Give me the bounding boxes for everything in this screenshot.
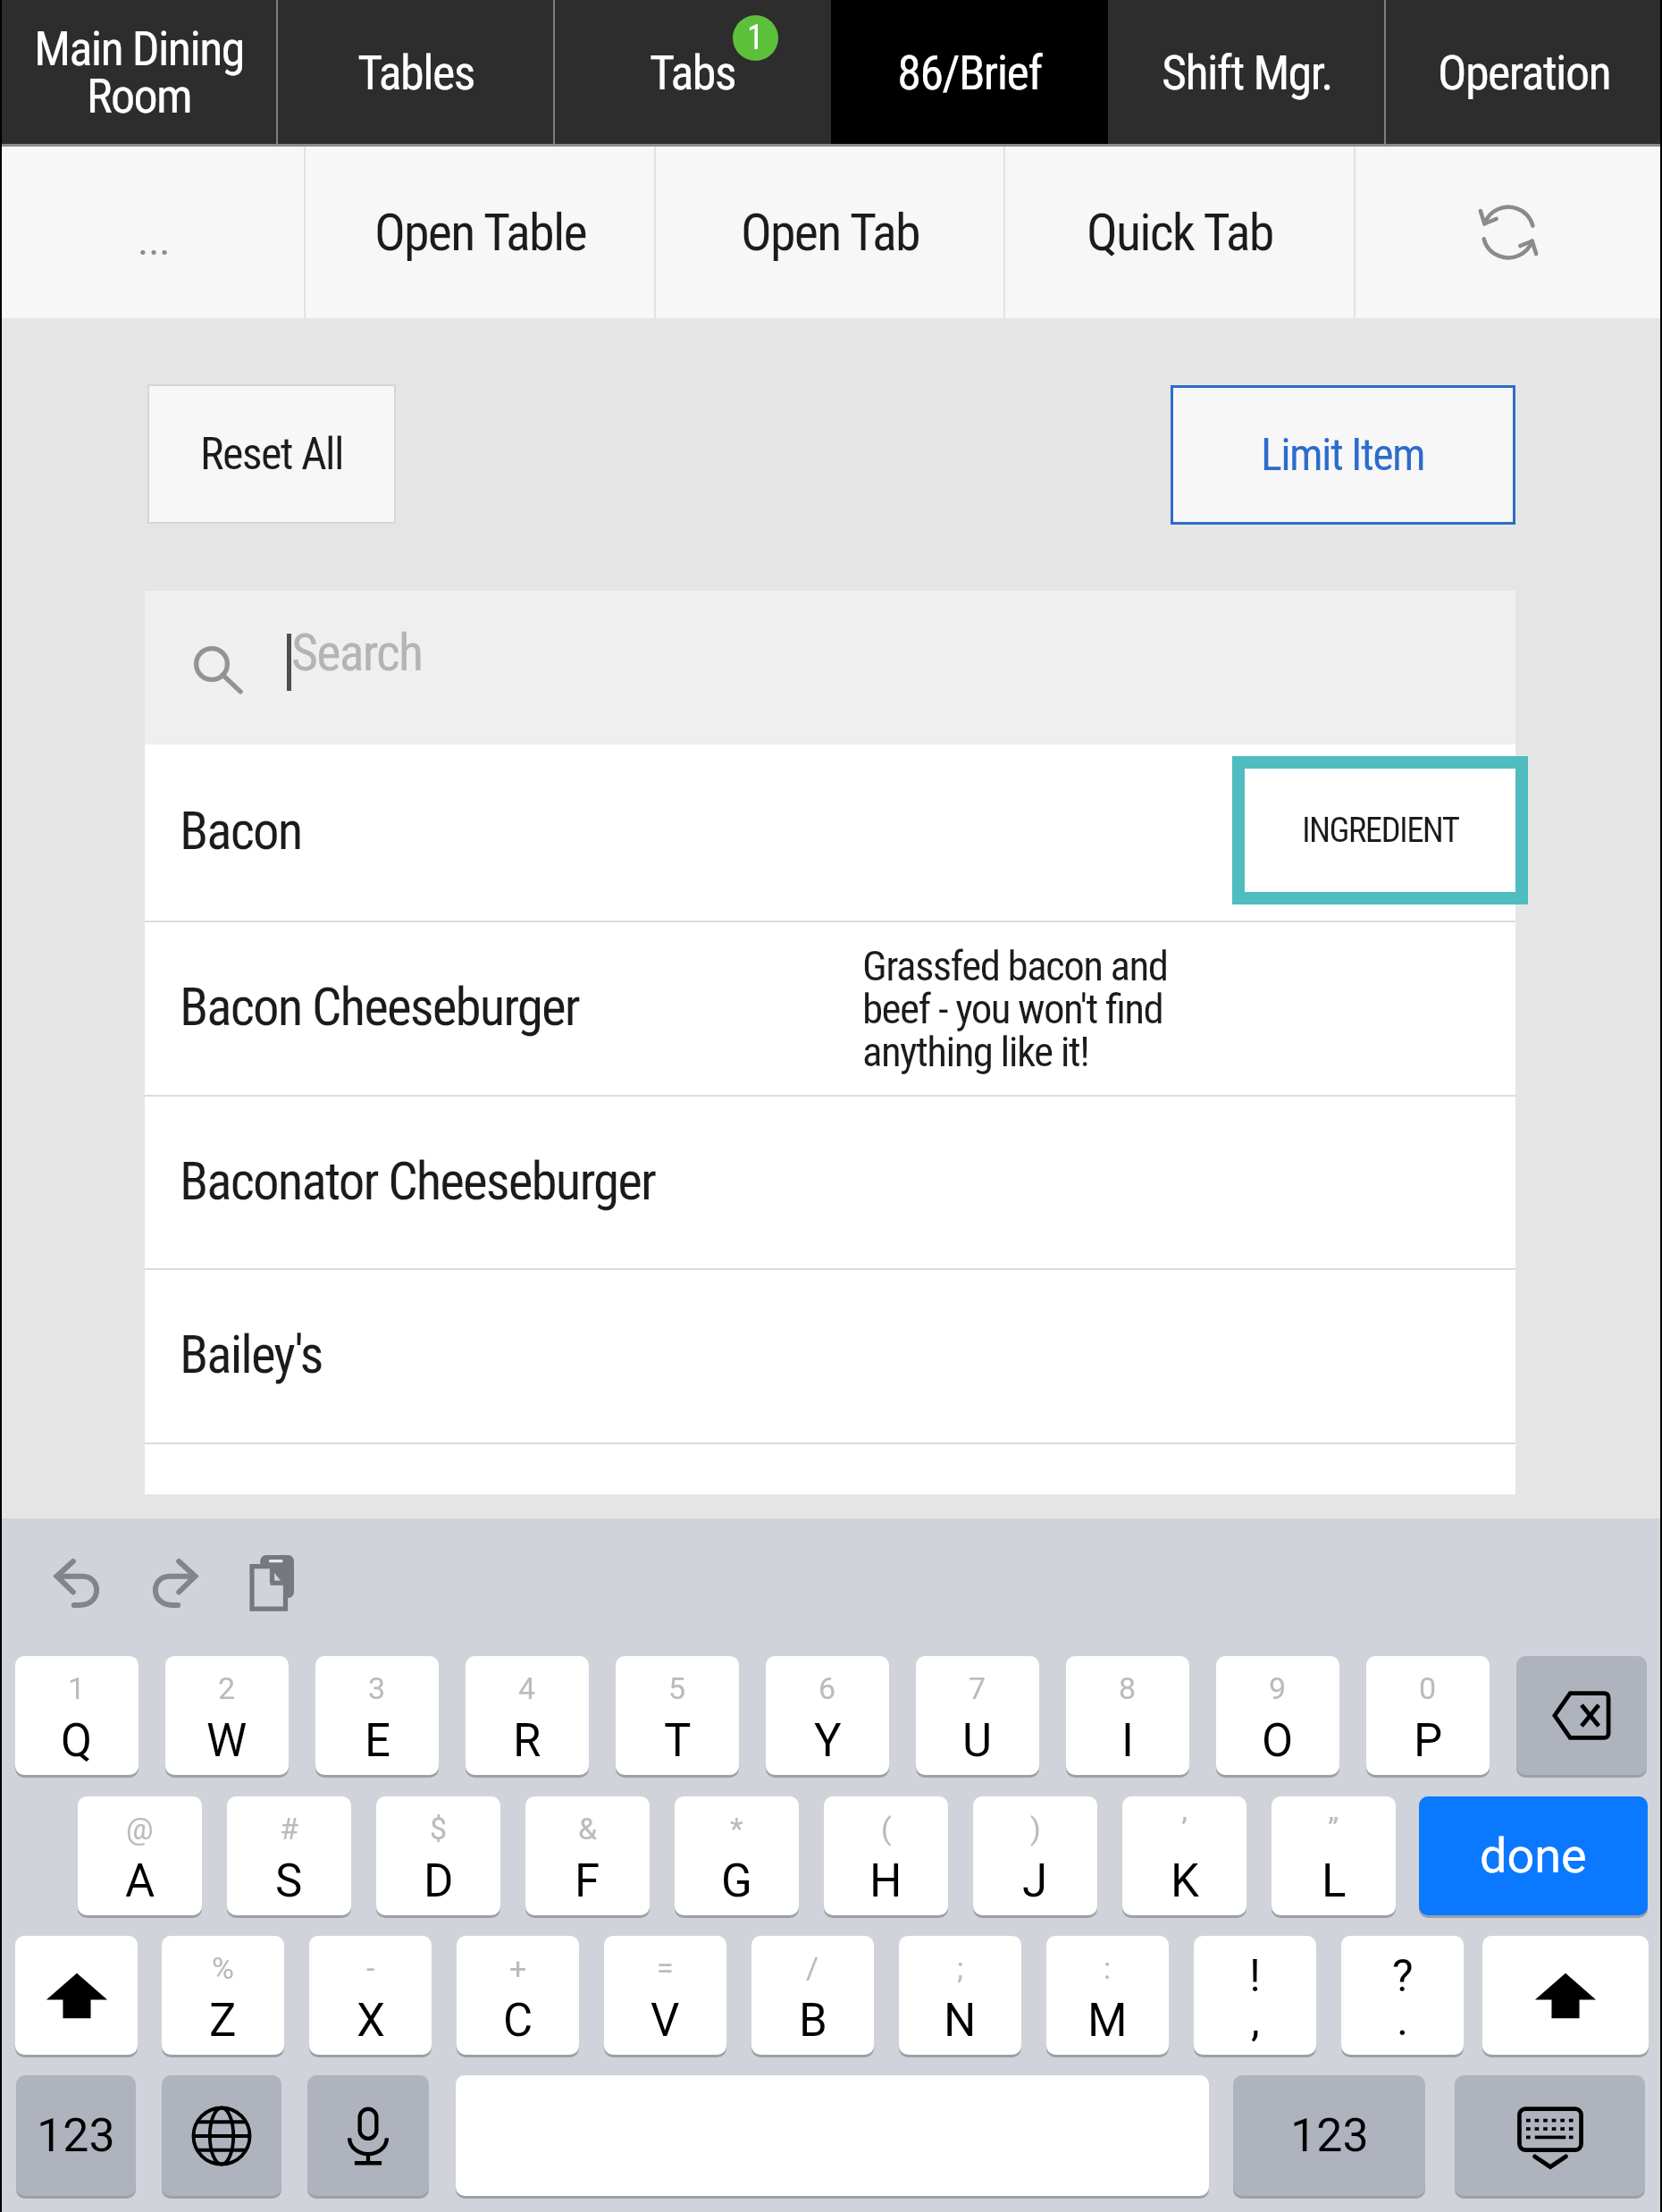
staticText: 8: [1119, 1670, 1137, 1706]
staticText: C: [503, 1994, 533, 2048]
staticText: ;: [957, 1950, 964, 1986]
button[interactable]: ’: [1122, 1796, 1246, 1915]
staticText: T: [664, 1714, 692, 1768]
button[interactable]: -: [309, 1936, 432, 2055]
staticText: U: [962, 1714, 993, 1768]
button[interactable]: Tables: [277, 0, 554, 145]
staticText: I: [1121, 1714, 1134, 1768]
staticText: Y: [814, 1714, 842, 1768]
staticText: 6: [818, 1670, 836, 1706]
button[interactable]: Baconator Cheeseburger: [145, 1097, 1515, 1268]
button[interactable]: (: [824, 1796, 948, 1915]
staticText: -: [366, 1950, 375, 1986]
button[interactable]: !: [1194, 1936, 1316, 2055]
button[interactable]: =: [604, 1936, 726, 2055]
button[interactable]: 5: [616, 1656, 739, 1775]
staticText: Z: [209, 1994, 237, 2048]
staticText: X: [357, 1994, 385, 2048]
button[interactable]: $: [376, 1796, 500, 1915]
button[interactable]: :: [1046, 1936, 1169, 2055]
button[interactable]: Limit Item: [1171, 385, 1515, 525]
button[interactable]: Backspace: [1516, 1656, 1647, 1775]
button[interactable]: *: [675, 1796, 799, 1915]
button[interactable]: Operation: [1385, 0, 1662, 145]
button[interactable]: 7: [916, 1656, 1039, 1775]
staticText: done: [1480, 1828, 1587, 1884]
button[interactable]: Space: [456, 2075, 1209, 2196]
staticText: .: [1397, 1994, 1409, 2047]
button[interactable]: Shift: [15, 1936, 138, 2055]
button[interactable]: #: [227, 1796, 351, 1915]
staticText: Search: [291, 622, 423, 683]
button[interactable]: %: [162, 1936, 284, 2055]
button[interactable]: 0: [1366, 1656, 1490, 1775]
staticText: 7: [969, 1670, 986, 1706]
staticText: A: [125, 1855, 155, 1908]
button[interactable]: Bacon Cheeseburger: [145, 922, 1515, 1095]
staticText: 123: [1290, 2108, 1369, 2163]
staticText: Main Dining Room: [34, 21, 244, 124]
staticText: ...: [138, 216, 171, 265]
button[interactable]: Undo: [32, 1538, 123, 1629]
button[interactable]: Quick Tab: [1004, 146, 1355, 318]
button[interactable]: @: [78, 1796, 202, 1915]
staticText: N: [944, 1994, 977, 2048]
button[interactable]: ...: [0, 146, 305, 318]
staticText: E: [365, 1714, 390, 1768]
button[interactable]: INGREDIENT: [1232, 756, 1528, 904]
staticText: Grassfed bacon and beef - you won't find…: [862, 941, 1168, 1076]
button[interactable]: Bailey's: [145, 1270, 1515, 1442]
button[interactable]: Refresh: [1355, 146, 1662, 318]
button[interactable]: Bacon: [145, 744, 1515, 921]
staticText: Q: [61, 1714, 93, 1768]
button[interactable]: 9: [1216, 1656, 1339, 1775]
button[interactable]: Shift Mgr.: [1108, 0, 1385, 145]
button[interactable]: Tabs: [554, 0, 831, 145]
staticText: Operation: [1438, 45, 1610, 101]
button[interactable]: Dictation: [307, 2075, 429, 2196]
button[interactable]: Paste: [226, 1536, 317, 1627]
staticText: G: [721, 1855, 752, 1908]
staticText: $: [430, 1811, 448, 1846]
staticText: +: [509, 1950, 527, 1986]
button[interactable]: 3: [315, 1656, 439, 1775]
staticText: :: [1104, 1950, 1112, 1986]
staticText: (: [881, 1811, 892, 1846]
button[interactable]: Open Tab: [655, 146, 1004, 318]
button[interactable]: done: [1419, 1796, 1648, 1915]
staticText: ’: [1181, 1811, 1188, 1846]
staticText: 123: [37, 2108, 115, 2163]
button[interactable]: 123: [16, 2075, 136, 2196]
button[interactable]: 86/Brief: [831, 0, 1108, 145]
button[interactable]: Open Table: [305, 146, 655, 318]
staticText: 1: [68, 1670, 86, 1706]
button[interactable]: ?: [1341, 1936, 1464, 2055]
staticText: 9: [1269, 1670, 1287, 1706]
button[interactable]: ): [973, 1796, 1097, 1915]
button[interactable]: ”: [1272, 1796, 1396, 1915]
button[interactable]: 6: [766, 1656, 889, 1775]
staticText: /: [806, 1950, 819, 1986]
button[interactable]: /: [751, 1936, 874, 2055]
staticText: ,: [1251, 1994, 1260, 2047]
staticText: *: [730, 1811, 743, 1846]
button[interactable]: Main Dining Room: [0, 0, 277, 145]
button[interactable]: 2: [165, 1656, 289, 1775]
button[interactable]: Shift: [1482, 1936, 1649, 2055]
button[interactable]: Hide keyboard: [1455, 2075, 1645, 2196]
staticText: Bacon Cheeseburger: [180, 976, 579, 1038]
button[interactable]: Reset All: [147, 384, 396, 524]
button[interactable]: 8: [1066, 1656, 1189, 1775]
button[interactable]: Next keyboard: [162, 2075, 281, 2196]
button[interactable]: 4: [466, 1656, 589, 1775]
button[interactable]: ;: [899, 1936, 1021, 2055]
button[interactable]: +: [457, 1936, 579, 2055]
button[interactable]: 123: [1233, 2075, 1425, 2196]
button[interactable]: 1: [15, 1656, 138, 1775]
button[interactable]: Search: [145, 591, 1515, 744]
staticText: ”: [1328, 1811, 1339, 1846]
staticText: 3: [368, 1670, 386, 1706]
button[interactable]: &: [525, 1796, 650, 1915]
staticText: Shift Mgr.: [1162, 45, 1332, 101]
button[interactable]: Redo: [129, 1538, 220, 1629]
